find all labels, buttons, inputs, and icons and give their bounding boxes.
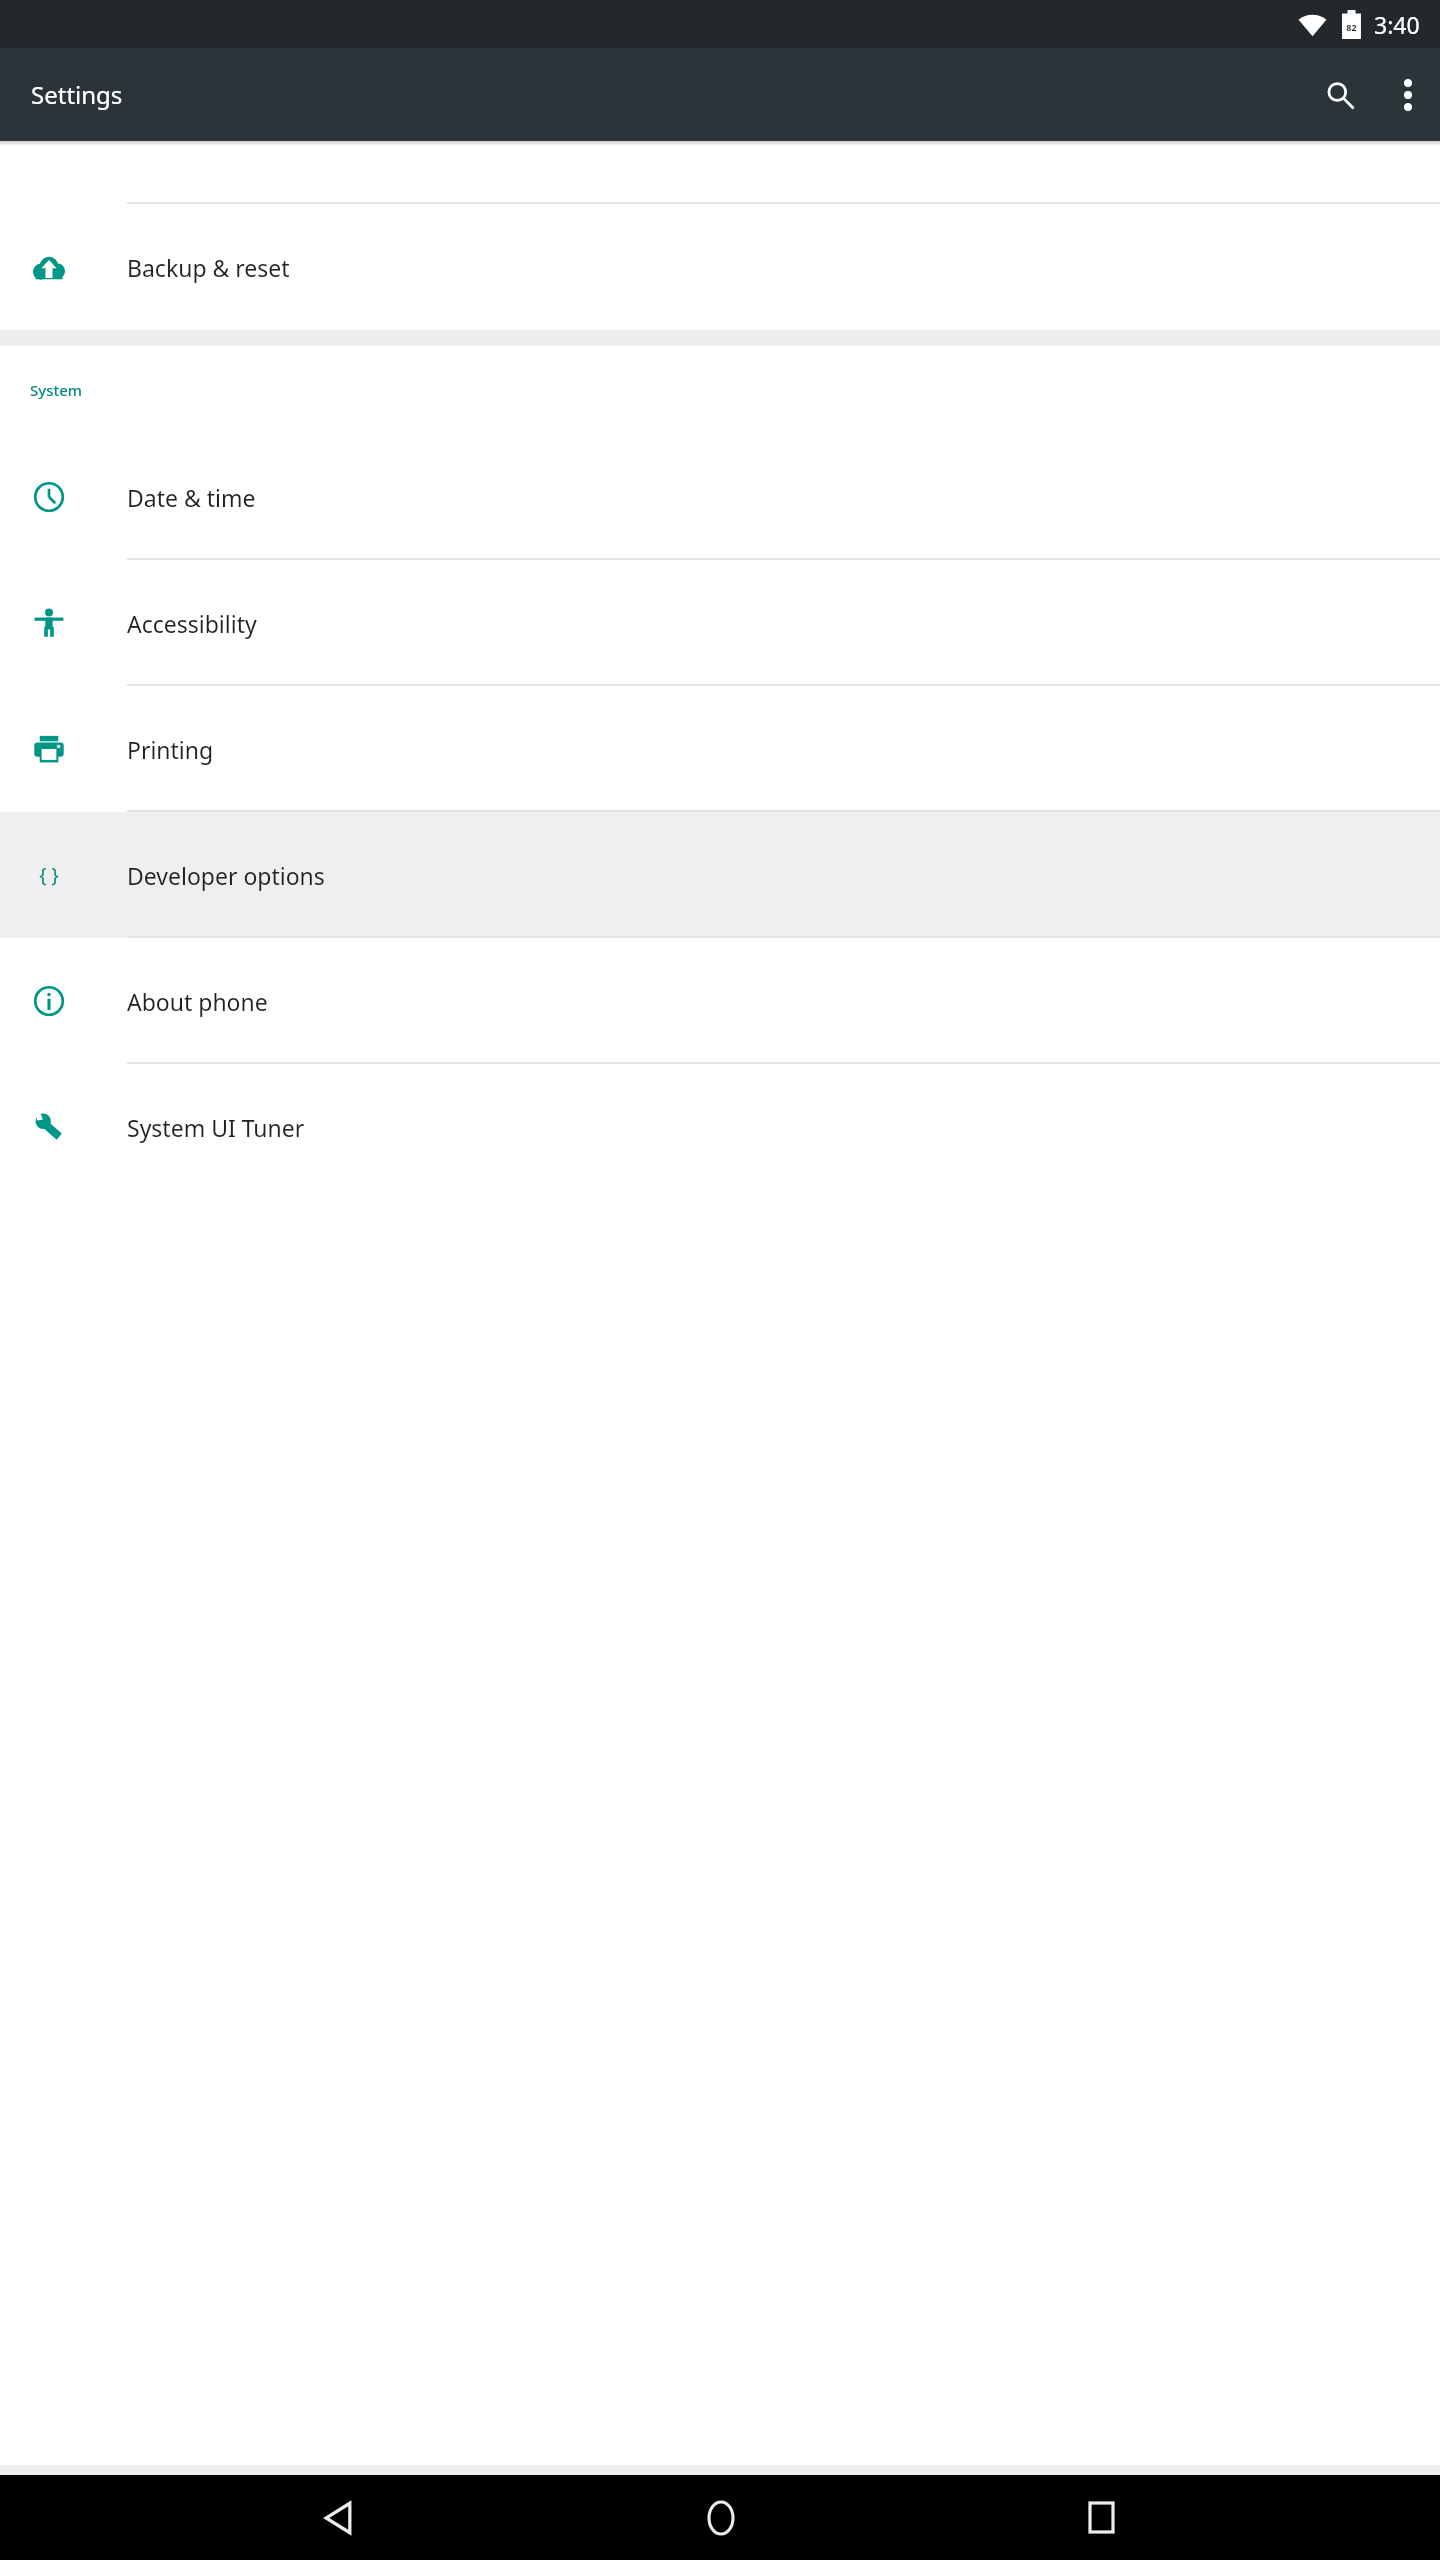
button[interactable]: Accessibility [0,560,1440,686]
staticText: Developer options [127,860,325,891]
staticText: Accessibility [127,608,257,639]
button[interactable]: Printing [0,686,1440,812]
staticText: About phone [127,986,268,1017]
staticText: System UI Tuner [127,1112,305,1143]
staticText: System [30,380,83,400]
button[interactable]: { } [0,812,1440,938]
button[interactable]: More options [1375,60,1440,130]
button[interactable]: System UI Tuner [0,1064,1440,1190]
button[interactable]: Search [1305,60,1375,130]
staticText: { } [39,862,59,888]
staticText: Settings [31,78,123,111]
button[interactable]: Date & time [0,434,1440,560]
staticText: 82 [1346,21,1357,33]
staticText: Printing [127,734,214,765]
staticText: Date & time [127,482,256,513]
button[interactable]: Back [296,2475,381,2560]
button[interactable]: Home [678,2475,763,2560]
staticText: Backup & reset [127,252,290,283]
staticText: 3:40 [1374,9,1420,40]
button[interactable]: Recent apps [1059,2475,1144,2560]
button[interactable]: Backup & reset [0,204,1440,330]
button[interactable]: About phone [0,938,1440,1064]
button[interactable]: Language & input [0,141,1440,204]
